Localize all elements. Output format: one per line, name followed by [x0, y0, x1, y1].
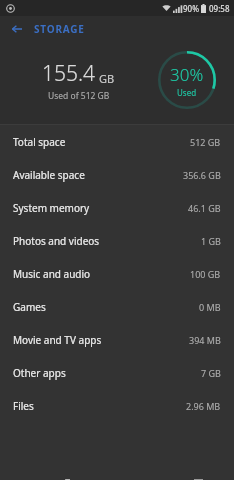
staticText: Available space — [13, 168, 85, 182]
staticText: 356.6 GB — [183, 169, 221, 181]
button[interactable]: Other apps — [0, 356, 234, 389]
staticText: Games — [13, 300, 46, 314]
button[interactable]: Movie and TV apps — [0, 323, 234, 356]
staticText: Used of 512 GB — [48, 90, 110, 102]
staticText: Movie and TV apps — [13, 333, 102, 347]
button[interactable]: Games — [0, 290, 234, 323]
staticText: Used — [177, 87, 197, 98]
staticText: 2.96 MB — [186, 400, 221, 412]
staticText: 09:58 — [209, 3, 230, 14]
staticText: 7 GB — [201, 367, 221, 379]
button[interactable]: Photos and videos — [0, 224, 234, 257]
button[interactable]: Available space — [0, 158, 234, 191]
staticText: 1 GB — [201, 235, 221, 247]
staticText: 394 MB — [189, 334, 221, 346]
staticText: 0 MB — [199, 301, 221, 313]
staticText: 512 GB — [190, 136, 221, 148]
staticText: 155.4 — [42, 59, 96, 88]
button[interactable]: Files — [0, 389, 234, 422]
staticText: 30% — [170, 63, 204, 86]
staticText: Photos and videos — [13, 234, 100, 248]
staticText: Music and audio — [13, 267, 91, 281]
staticText: 90% — [183, 3, 199, 14]
staticText: System memory — [13, 201, 90, 215]
staticText: 46.1 GB — [188, 202, 221, 214]
staticText: GB — [99, 71, 115, 86]
staticText: Total space — [13, 135, 66, 149]
button[interactable]: System memory — [0, 191, 234, 224]
button[interactable]: Music and audio — [0, 257, 234, 290]
button[interactable]: Total space — [0, 125, 234, 158]
staticText: 100 GB — [190, 268, 221, 280]
staticText: STORAGE — [34, 22, 85, 36]
button[interactable]: Back — [8, 20, 26, 38]
staticText: Files — [13, 399, 34, 413]
staticText: Other apps — [13, 366, 66, 380]
